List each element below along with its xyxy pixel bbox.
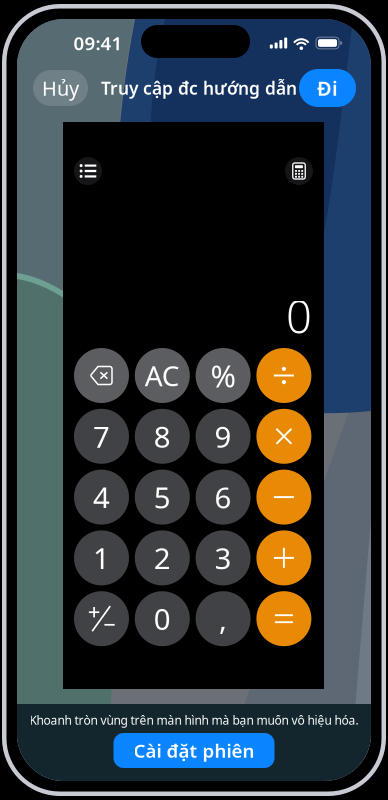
staticText: 09:41 (73, 31, 122, 55)
staticText: Đi (317, 75, 338, 101)
button[interactable]: 0 (135, 591, 190, 646)
staticText: 8 (154, 417, 171, 456)
button[interactable]: 7 (74, 409, 129, 464)
staticText: 0 (154, 599, 171, 638)
staticText: 1 (93, 538, 110, 577)
button[interactable]: Hủy (33, 70, 88, 106)
staticText: AC (145, 357, 180, 394)
staticText: 2 (154, 538, 171, 577)
button[interactable] (256, 348, 311, 403)
button[interactable]: 3 (196, 530, 251, 585)
button[interactable] (256, 470, 311, 525)
button[interactable] (74, 348, 129, 403)
staticText: 0 (286, 286, 312, 346)
button[interactable]: 4 (74, 470, 129, 525)
staticText: 3 (215, 538, 232, 577)
staticText: 4 (93, 478, 110, 517)
button[interactable]: , (196, 591, 251, 646)
staticText: , (219, 599, 227, 638)
staticText: 7 (93, 417, 110, 456)
button[interactable] (256, 409, 311, 464)
staticText: % (211, 355, 236, 396)
button[interactable]: Calculator mode (285, 157, 313, 185)
button[interactable]: 6 (196, 470, 251, 525)
button[interactable]: 9 (196, 409, 251, 464)
button[interactable]: 2 (135, 530, 190, 585)
button[interactable]: AC (135, 348, 190, 403)
staticText: Hủy (42, 75, 79, 101)
button[interactable]: History (74, 157, 102, 185)
button[interactable] (256, 530, 311, 585)
staticText: 6 (215, 478, 232, 517)
button[interactable]: 5 (135, 470, 190, 525)
staticText: Cài đặt phiên (133, 738, 254, 763)
button[interactable] (256, 591, 311, 646)
staticText: Khoanh tròn vùng trên màn hình mà bạn mu… (29, 712, 358, 728)
staticText: Truy cập đc hướng dẫn (101, 76, 297, 99)
button[interactable] (74, 591, 129, 646)
button[interactable]: Đi (299, 69, 356, 107)
button[interactable]: Cài đặt phiên (113, 733, 274, 768)
staticText: 5 (154, 478, 171, 517)
button[interactable]: 8 (135, 409, 190, 464)
button[interactable]: % (196, 348, 251, 403)
button[interactable]: 1 (74, 530, 129, 585)
staticText: 9 (215, 417, 232, 456)
